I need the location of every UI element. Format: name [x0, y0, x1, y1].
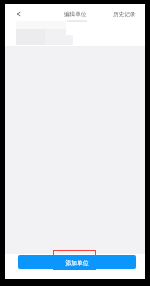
button[interactable]: 历史记录 [109, 8, 140, 21]
button[interactable]: 添加单位 [18, 255, 136, 269]
staticText: 历史记录 [113, 11, 136, 18]
staticText: 编辑单位 [64, 11, 87, 18]
button[interactable]: Back [11, 7, 26, 20]
staticText: 添加单位 [65, 259, 89, 266]
